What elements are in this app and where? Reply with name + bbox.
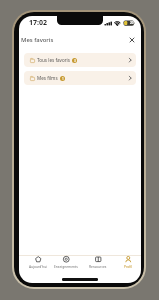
button[interactable]: Mes films — [24, 71, 136, 85]
button[interactable]: Ressources — [83, 256, 113, 269]
staticText: Profil — [124, 264, 133, 268]
staticText: Ressources — [89, 264, 107, 268]
staticText: Aujourd'hui — [29, 264, 48, 268]
staticText: 20 — [130, 21, 134, 25]
button[interactable] — [127, 35, 137, 45]
staticText: 1 — [62, 77, 64, 81]
staticText: Tous les favoris — [37, 57, 70, 63]
button[interactable]: Tous les favoris — [24, 53, 136, 67]
staticText: 3 — [74, 59, 76, 63]
button[interactable]: Profil — [113, 256, 141, 269]
button[interactable]: Enseignements — [51, 256, 81, 269]
staticText: Mes favoris — [21, 36, 54, 44]
staticText: Enseignements — [54, 264, 78, 268]
staticText: Mes films — [37, 75, 58, 81]
button[interactable]: Aujourd'hui — [23, 256, 53, 269]
staticText: 17:02 — [29, 18, 47, 27]
